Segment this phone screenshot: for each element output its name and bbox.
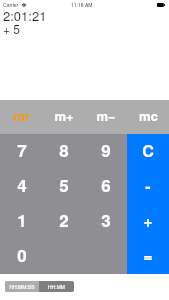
staticText: 8 [59, 138, 69, 162]
staticText: 2:01:21 [3, 6, 47, 25]
button[interactable]: m− [85, 100, 127, 134]
staticText: HH:MM:SS [9, 283, 35, 290]
button[interactable]: C [127, 134, 169, 169]
staticText: C [142, 139, 154, 162]
staticText: HH:MM [48, 283, 65, 290]
button[interactable]: 9 [85, 134, 127, 169]
staticText: 3 [101, 208, 111, 232]
staticText: 7 [17, 138, 27, 162]
button[interactable]: 8 [43, 134, 85, 169]
staticText: mc [139, 106, 158, 125]
button[interactable]: 7 [0, 134, 43, 169]
staticText: + [143, 209, 153, 232]
staticText: m+ [54, 106, 74, 125]
button[interactable]: 1 [0, 204, 43, 239]
staticText: = [143, 244, 153, 267]
staticText: 4 [17, 173, 27, 197]
button[interactable]: mr [0, 100, 43, 134]
button[interactable]: HH:MM:SS [5, 281, 39, 292]
button[interactable]: HH:MM [39, 281, 74, 292]
button[interactable]: 6 [85, 169, 127, 204]
button[interactable]: 0 [0, 239, 43, 274]
staticText: - [145, 174, 151, 197]
staticText: Carrier [3, 1, 19, 8]
button[interactable]: 5 [43, 169, 85, 204]
staticText: 0 [17, 243, 27, 267]
staticText: 11:18 AM [71, 1, 93, 8]
button[interactable]: m+ [43, 100, 85, 134]
staticText: 2 [59, 208, 69, 232]
button[interactable]: 2 [43, 204, 85, 239]
button[interactable]: = [127, 239, 169, 274]
staticText: + 5 [3, 20, 21, 37]
button[interactable]: + [127, 204, 169, 239]
staticText: 6 [101, 173, 111, 197]
staticText: mr [13, 106, 30, 125]
button[interactable]: 4 [0, 169, 43, 204]
staticText: 9 [101, 138, 111, 162]
button[interactable]: 3 [85, 204, 127, 239]
staticText: m− [96, 106, 116, 125]
staticText: 5 [59, 173, 69, 197]
button[interactable]: - [127, 169, 169, 204]
staticText: 1 [17, 208, 27, 232]
button[interactable]: mc [127, 100, 169, 134]
